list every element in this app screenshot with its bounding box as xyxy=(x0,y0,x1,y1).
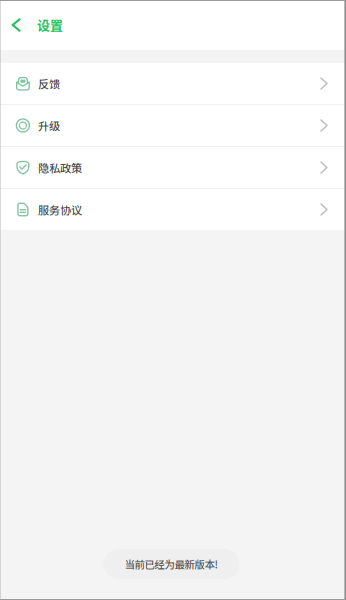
button[interactable]: Back xyxy=(0,0,37,50)
staticText: 升级 xyxy=(38,117,60,134)
button[interactable]: 反馈 xyxy=(0,63,346,105)
staticText: 隐私政策 xyxy=(38,159,82,176)
staticText: 当前已经为最新版本! xyxy=(124,556,218,572)
staticText: 反馈 xyxy=(38,75,60,92)
staticText: 服务协议 xyxy=(38,201,82,218)
button[interactable]: 升级 xyxy=(0,105,346,147)
button[interactable]: 服务协议 xyxy=(0,189,346,230)
button[interactable]: 隐私政策 xyxy=(0,147,346,189)
staticText: 设置 xyxy=(37,16,63,34)
